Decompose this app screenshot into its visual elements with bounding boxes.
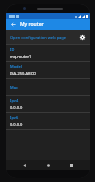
button[interactable]: Navigate up bbox=[9, 20, 18, 29]
staticText: mq.router1 bbox=[10, 54, 32, 59]
staticText: Ipv4 bbox=[10, 98, 19, 103]
staticText: 0.0.0.0 bbox=[10, 122, 23, 127]
staticText: ISA-250-ABCD bbox=[10, 71, 37, 76]
button[interactable]: Recent apps bbox=[67, 161, 76, 170]
staticText: Open configuration web page bbox=[10, 35, 78, 40]
button[interactable]: Ipv4 bbox=[6, 96, 90, 112]
button[interactable]: Settings bbox=[78, 33, 86, 41]
button[interactable]: Home bbox=[44, 161, 53, 170]
button[interactable]: ID bbox=[6, 45, 90, 61]
button[interactable]: Back bbox=[20, 161, 29, 170]
staticText: My router bbox=[20, 21, 44, 28]
button[interactable]: Ipv6 bbox=[6, 113, 90, 129]
staticText: 0.0.0.0 bbox=[10, 105, 23, 110]
staticText: Ipv6 bbox=[10, 115, 19, 120]
button[interactable]: Open configuration web page bbox=[6, 30, 90, 44]
staticText: ID bbox=[10, 47, 15, 52]
button[interactable]: Model bbox=[6, 62, 90, 78]
staticText: Mac bbox=[10, 85, 18, 90]
staticText: Model bbox=[10, 64, 22, 69]
button[interactable]: Mac bbox=[6, 79, 90, 95]
